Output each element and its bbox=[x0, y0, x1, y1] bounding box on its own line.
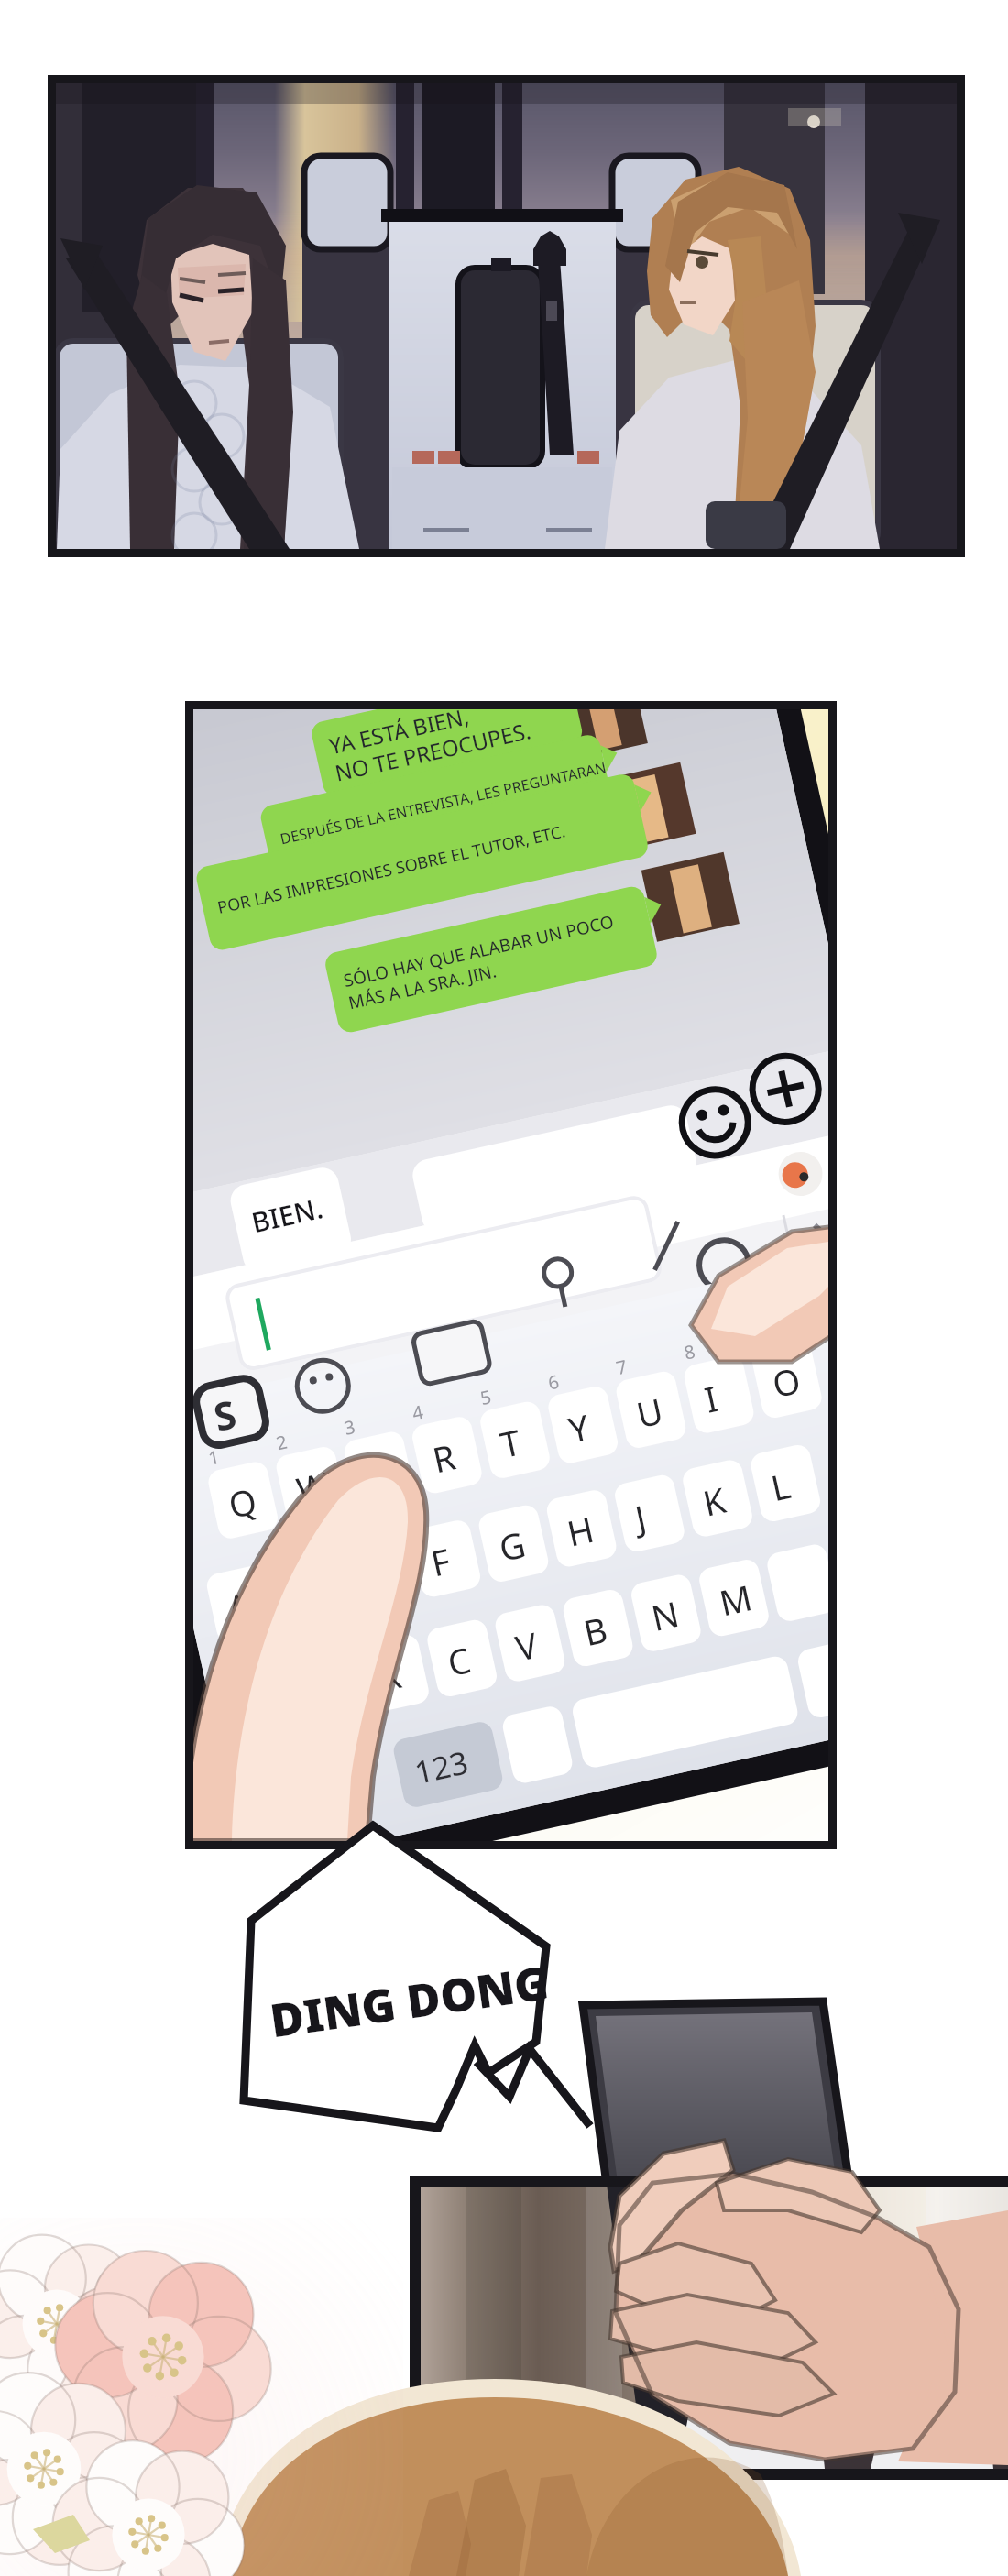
button[interactable]: Comic page bbox=[0, 0, 1008, 2576]
